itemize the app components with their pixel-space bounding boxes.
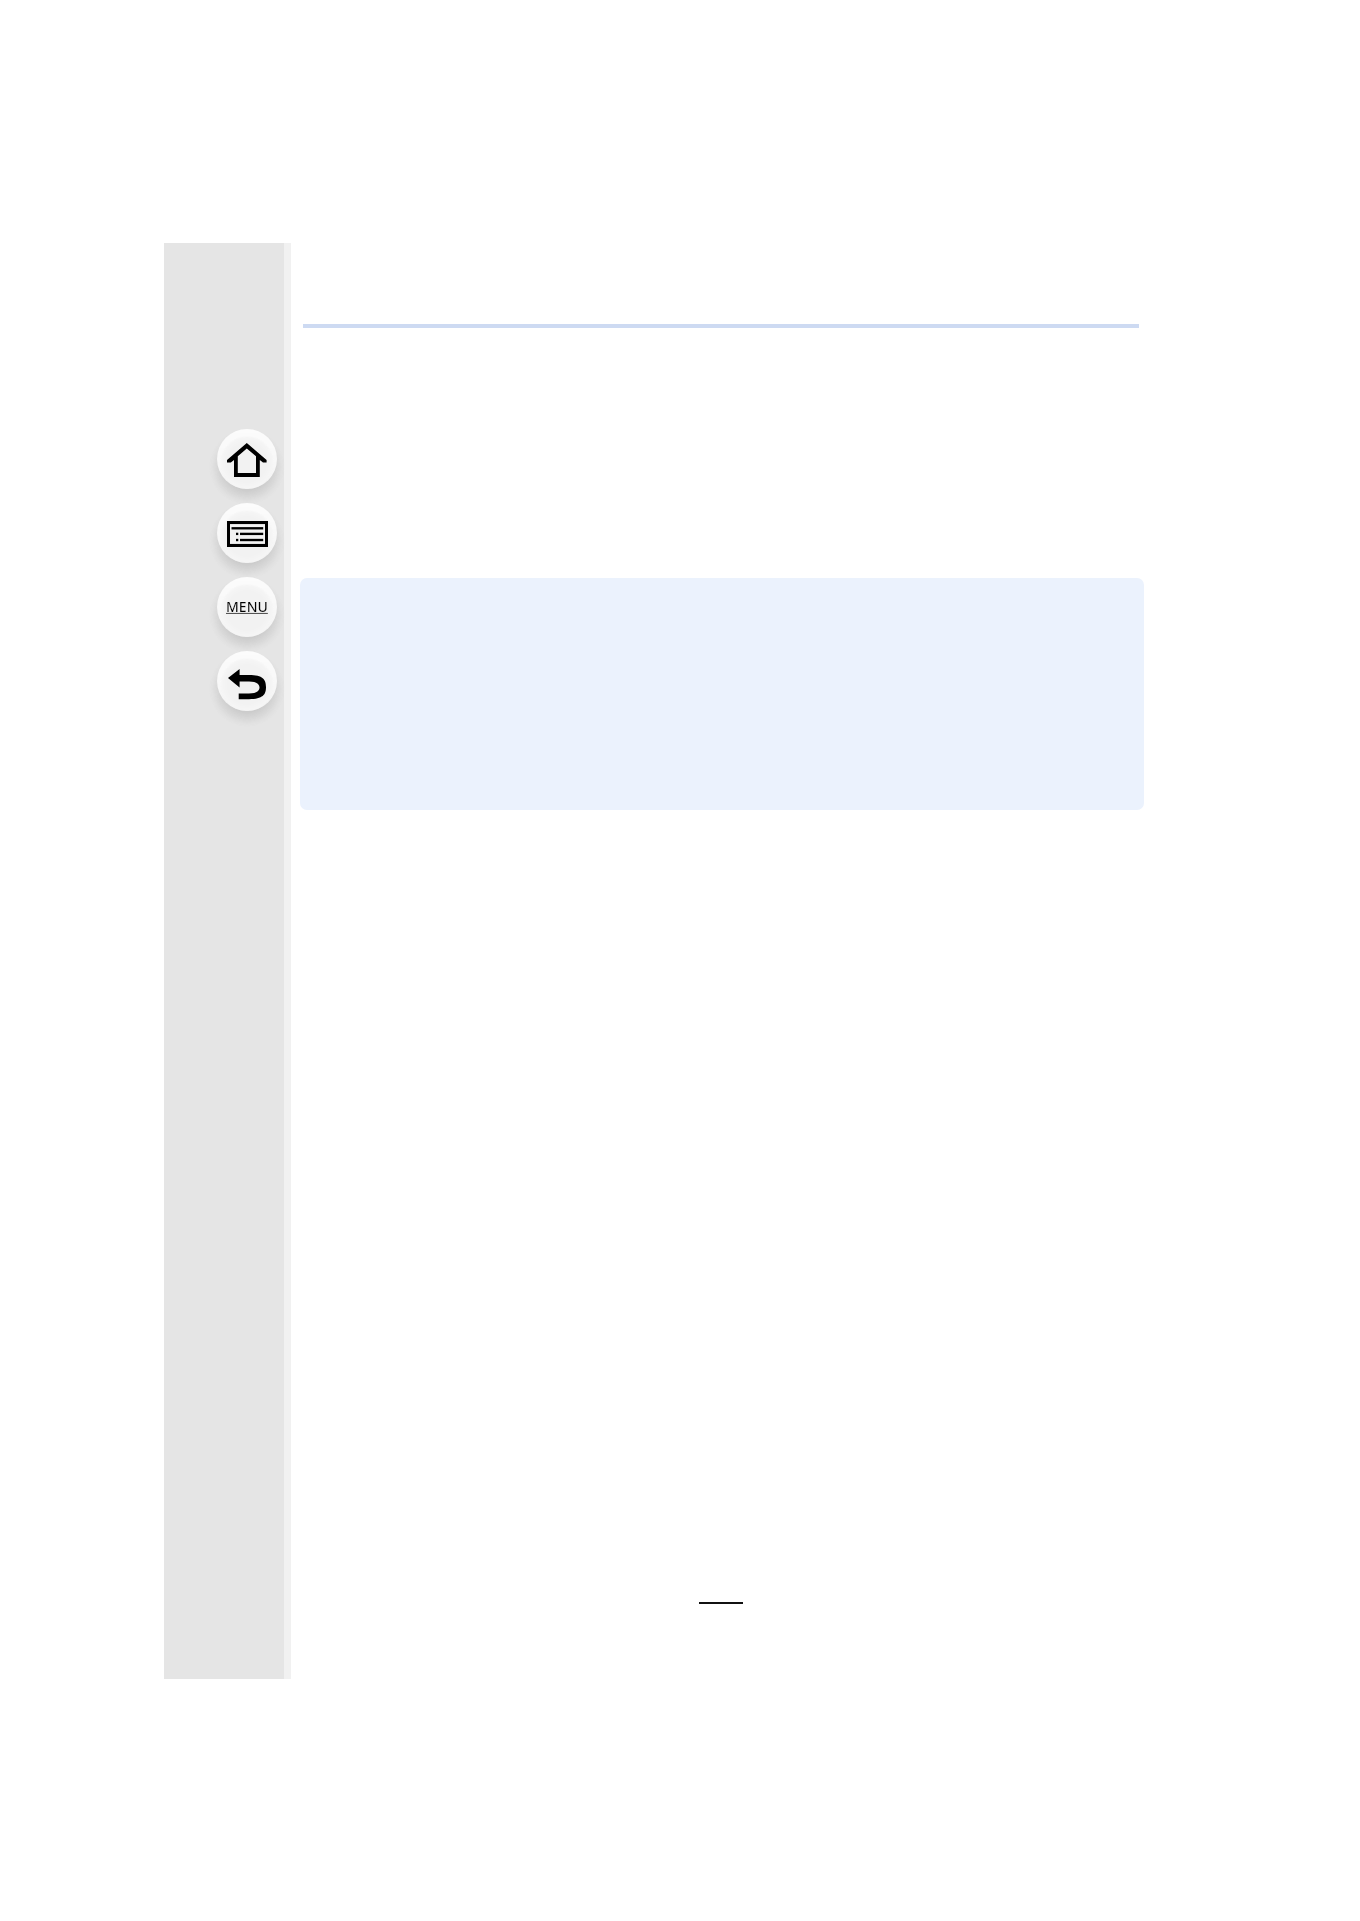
button[interactable]: Back <box>209 643 285 719</box>
button[interactable]: Contents <box>209 495 285 571</box>
button[interactable]: Menu <box>209 569 285 645</box>
staticText: MENU <box>226 597 268 616</box>
button[interactable]: Home <box>209 421 285 497</box>
